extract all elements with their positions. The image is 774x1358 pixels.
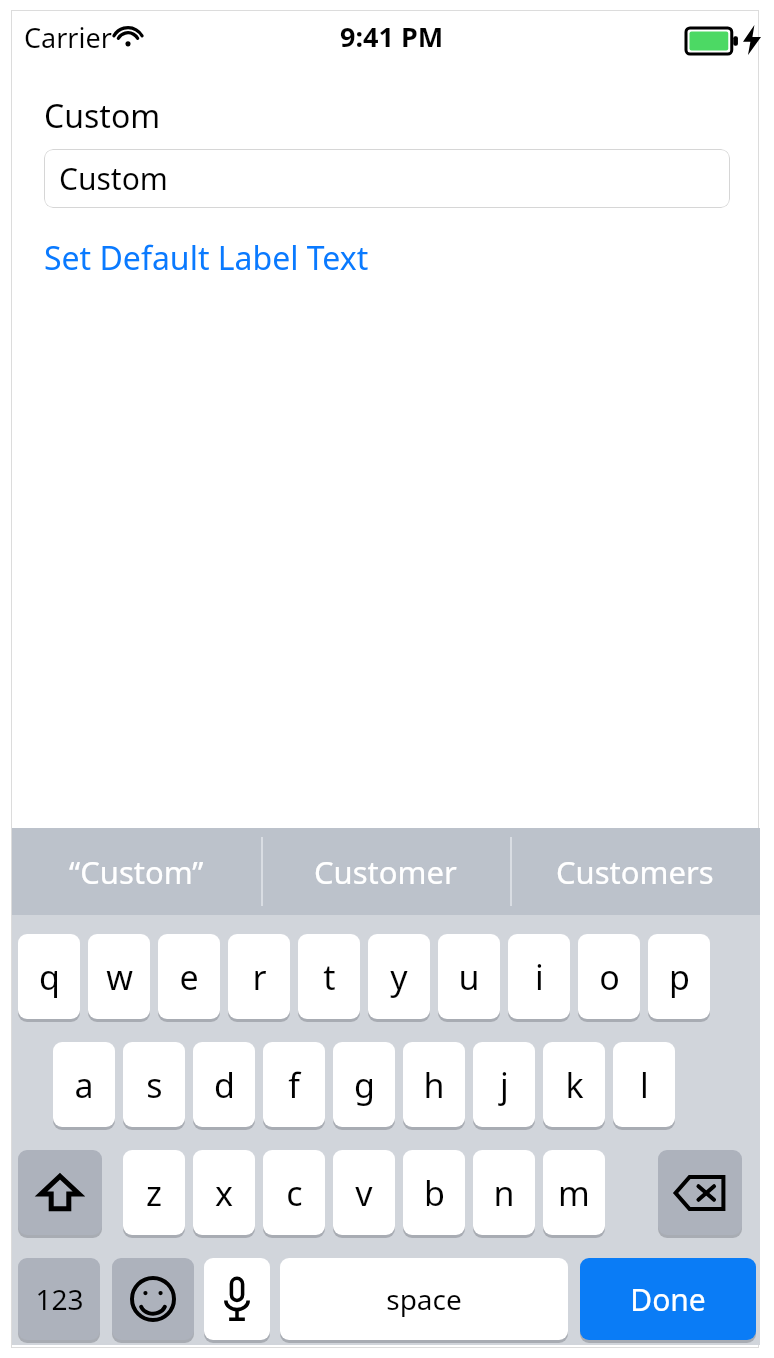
staticText: a (74, 1062, 94, 1108)
staticText: q (39, 954, 60, 1000)
button[interactable]: g (333, 1042, 395, 1127)
button[interactable]: x (193, 1150, 255, 1235)
staticText: t (323, 954, 336, 1000)
button[interactable]: b (403, 1150, 465, 1235)
button[interactable]: m (543, 1150, 605, 1235)
staticText: v (355, 1170, 373, 1216)
button[interactable]: Done (580, 1258, 756, 1340)
button[interactable]: e (158, 934, 220, 1019)
staticText: “Custom” (69, 851, 204, 893)
button[interactable]: o (578, 934, 640, 1019)
button[interactable]: z (123, 1150, 185, 1235)
staticText: 123 (35, 1280, 84, 1318)
button[interactable]: “Custom” (12, 828, 261, 915)
button[interactable]: 123 (18, 1258, 100, 1340)
button[interactable]: Set Default Label Text (44, 236, 369, 280)
staticText: w (106, 954, 133, 1000)
staticText: 9:41 PM (340, 18, 444, 55)
button[interactable]: t (298, 934, 360, 1019)
button[interactable]: w (88, 934, 150, 1019)
button[interactable]: space (280, 1258, 568, 1340)
staticText: h (423, 1062, 445, 1108)
staticText: k (565, 1062, 584, 1108)
staticText: s (146, 1062, 163, 1108)
button[interactable]: l (613, 1042, 675, 1127)
staticText: y (390, 954, 408, 1000)
staticText: u (458, 954, 480, 1000)
staticText: g (354, 1062, 375, 1108)
button[interactable]: j (473, 1042, 535, 1127)
button[interactable]: Backspace (658, 1150, 742, 1235)
button[interactable]: i (508, 934, 570, 1019)
staticText: j (500, 1062, 509, 1108)
button[interactable]: c (263, 1150, 325, 1235)
staticText: p (669, 954, 690, 1000)
staticText: r (252, 954, 267, 1000)
button[interactable]: Dictation (204, 1258, 270, 1340)
button[interactable]: Customer (261, 828, 510, 915)
button[interactable]: Emoji (112, 1258, 194, 1340)
button[interactable]: y (368, 934, 430, 1019)
button[interactable]: Customers (510, 828, 759, 915)
button[interactable]: r (228, 934, 290, 1019)
button[interactable]: d (193, 1042, 255, 1127)
staticText: Done (630, 1279, 706, 1320)
staticText: c (286, 1170, 303, 1216)
button[interactable]: s (123, 1042, 185, 1127)
staticText: space (386, 1280, 462, 1318)
staticText: b (424, 1170, 445, 1216)
button[interactable]: q (18, 934, 80, 1019)
staticText: Custom (59, 158, 168, 199)
staticText: Set Default Label Text (44, 236, 369, 280)
button[interactable]: a (53, 1042, 115, 1127)
staticText: f (288, 1062, 300, 1108)
staticText: z (146, 1170, 162, 1216)
staticText: e (179, 954, 199, 1000)
button[interactable]: Shift (18, 1150, 102, 1235)
button[interactable]: v (333, 1150, 395, 1235)
button[interactable]: Custom (44, 149, 730, 208)
button[interactable]: p (648, 934, 710, 1019)
staticText: n (493, 1170, 515, 1216)
staticText: x (215, 1170, 233, 1216)
button[interactable]: f (263, 1042, 325, 1127)
staticText: Customers (556, 851, 714, 893)
button[interactable]: n (473, 1150, 535, 1235)
button[interactable]: h (403, 1042, 465, 1127)
staticText: i (535, 954, 544, 1000)
button[interactable]: u (438, 934, 500, 1019)
staticText: o (599, 954, 620, 1000)
staticText: m (558, 1170, 590, 1216)
staticText: Custom (44, 94, 161, 138)
staticText: d (214, 1062, 235, 1108)
staticText: Carrier (24, 19, 112, 56)
button[interactable]: k (543, 1042, 605, 1127)
staticText: l (640, 1062, 649, 1108)
staticText: Customer (314, 851, 457, 893)
